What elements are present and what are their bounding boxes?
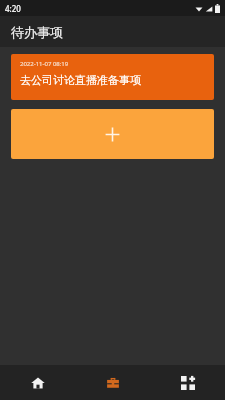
button[interactable]: Todo — [75, 365, 150, 400]
button[interactable]: Home — [0, 365, 75, 400]
staticText: 2022-11-07 08:19 — [20, 60, 69, 68]
staticText: 去公司讨论直播准备事项 — [20, 73, 141, 87]
button[interactable]: More — [150, 365, 225, 400]
button[interactable]: Add todo — [11, 109, 214, 159]
staticText: 待办事项 — [11, 24, 63, 40]
staticText: 4:20 — [5, 3, 21, 14]
button[interactable]: 2022-11-07 08:19 — [11, 54, 214, 100]
